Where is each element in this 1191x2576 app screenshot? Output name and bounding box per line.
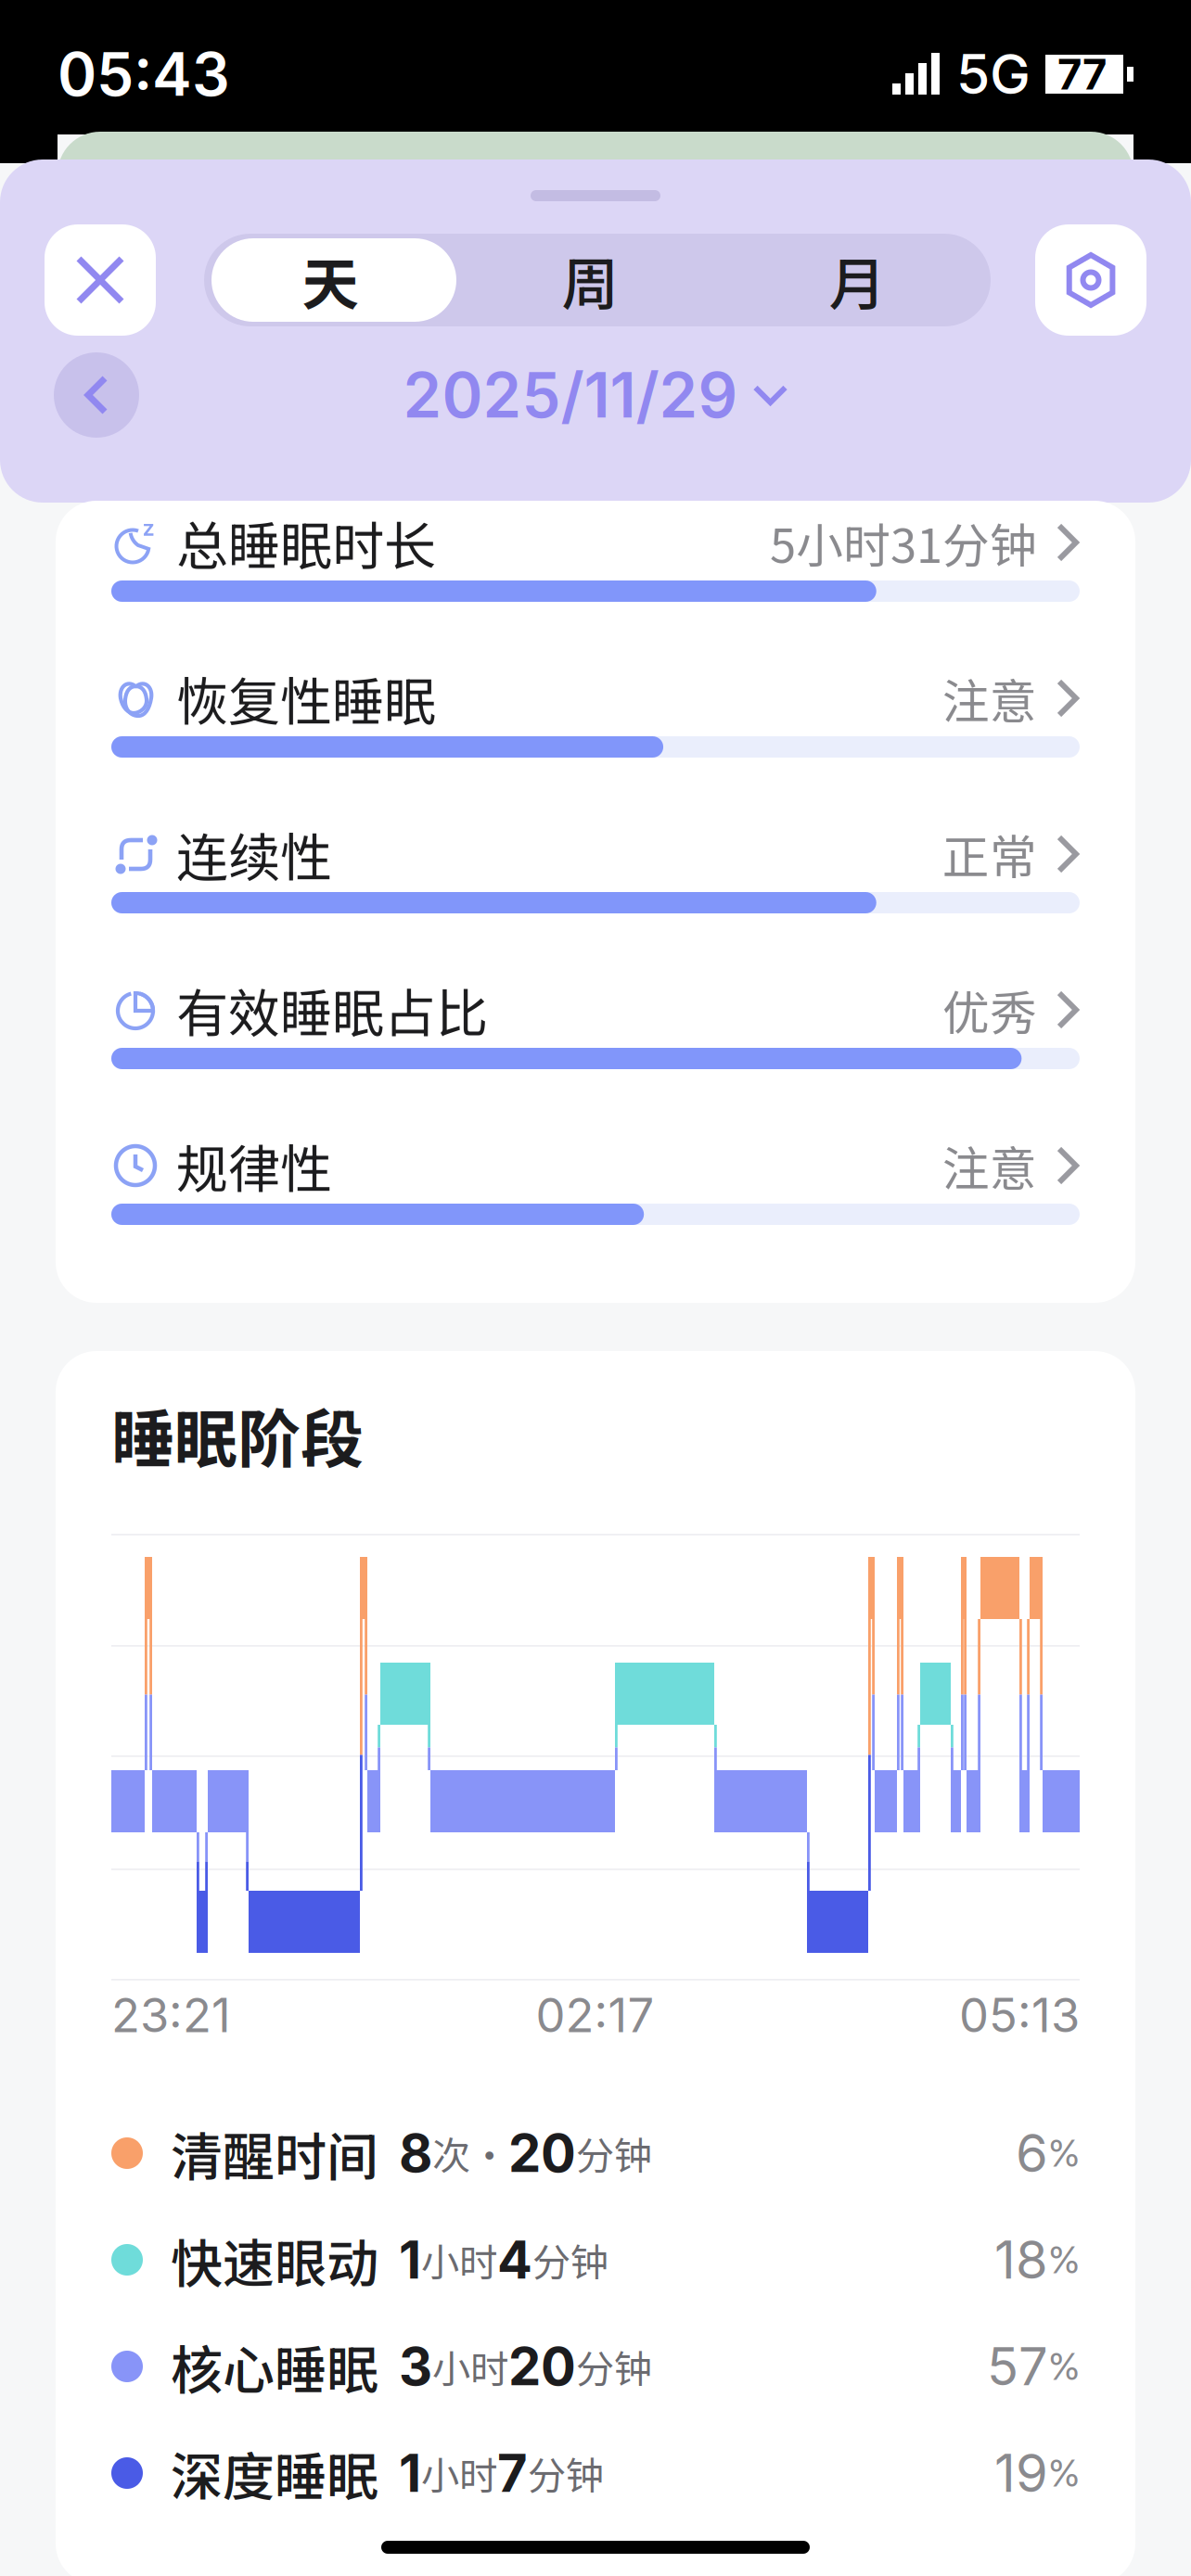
staticText: 恢复性睡眠 [176, 661, 436, 736]
staticText: 20 [508, 2335, 576, 2398]
staticText: 20 [508, 2122, 576, 2185]
button[interactable]: 月 [724, 234, 991, 326]
staticText: 分钟 [576, 2339, 652, 2394]
button[interactable]: 关闭 [45, 224, 156, 336]
button[interactable]: 天 [204, 234, 456, 326]
staticText: 周 [562, 239, 618, 321]
staticText: 77 [1057, 49, 1107, 100]
staticText: 睡眠阶段 [111, 1389, 364, 1480]
staticText: 分钟 [576, 2125, 652, 2181]
staticText: % [1048, 2237, 1080, 2282]
staticText: 分钟 [528, 2445, 604, 2501]
staticText: 7 [497, 2442, 528, 2505]
button[interactable]: 规律性 [111, 1141, 1080, 1225]
staticText: 1 [399, 2442, 421, 2505]
staticText: 5G [956, 41, 1031, 107]
button[interactable]: 周 [456, 234, 724, 326]
staticText: 4 [497, 2228, 532, 2291]
staticText: 23:21 [111, 1987, 231, 2043]
staticText: 有效睡眠占比 [176, 972, 488, 1047]
staticText: 8 [399, 2122, 432, 2185]
staticText: 18 [994, 2228, 1048, 2291]
staticText: % [1048, 2451, 1080, 2496]
staticText: 核心睡眠 [171, 2329, 378, 2404]
staticText: 1 [399, 2228, 421, 2291]
staticText: 分钟 [532, 2232, 608, 2288]
button[interactable]: 连续性 [111, 830, 1080, 913]
staticText: 注意 [942, 664, 1037, 732]
button[interactable]: 设置 [1035, 224, 1146, 336]
staticText: 规律性 [176, 1128, 332, 1203]
button[interactable]: 前一天 [54, 352, 139, 438]
staticText: 02:17 [536, 1987, 654, 2043]
staticText: 清醒时间 [171, 2116, 378, 2191]
staticText: 3 [399, 2335, 432, 2398]
staticText: z [142, 514, 154, 541]
staticText: 05:13 [959, 1987, 1080, 2043]
staticText: 6 [1016, 2122, 1048, 2185]
staticText: 优秀 [942, 976, 1037, 1044]
button[interactable]: 恢复性睡眠 [111, 674, 1080, 758]
staticText: 月 [829, 239, 885, 321]
staticText: 次· [432, 2125, 508, 2181]
staticText: 小时 [421, 2445, 497, 2501]
staticText: 05:43 [58, 38, 230, 110]
staticText: 天 [302, 239, 359, 321]
staticText: 2025/11/29 [403, 358, 738, 432]
staticText: 深度睡眠 [171, 2436, 378, 2511]
staticText: 小时 [432, 2339, 508, 2394]
staticText: 57 [987, 2335, 1048, 2398]
staticText: 注意 [942, 1132, 1037, 1200]
staticText: 正常 [942, 820, 1037, 888]
button[interactable]: z [111, 518, 1080, 602]
staticText: 快速眼动 [171, 2222, 378, 2297]
button[interactable]: 2025/11/29 [403, 358, 788, 432]
staticText: 5小时31分钟 [770, 508, 1037, 576]
staticText: 小时 [421, 2232, 497, 2288]
staticText: 总睡眠时长 [176, 505, 436, 580]
button[interactable]: 有效睡眠占比 [111, 986, 1080, 1069]
staticText: % [1048, 2131, 1080, 2176]
staticText: 19 [994, 2442, 1048, 2505]
staticText: % [1048, 2344, 1080, 2389]
staticText: 连续性 [176, 816, 332, 892]
